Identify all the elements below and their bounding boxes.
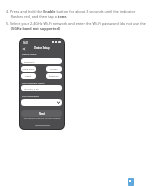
staticText: Bedroom — [24, 60, 35, 63]
staticText: Bedroom — [49, 75, 59, 78]
staticText: MYWIFI_2.4G — [24, 87, 39, 90]
staticText: 5. Select your 2.4GHz Wi-Fi network and … — [6, 21, 146, 31]
staticText: 4. Press and hold the Enable button for … — [6, 9, 136, 19]
other: Document — [128, 178, 134, 186]
staticText: Next — [39, 112, 45, 116]
button[interactable]: Living room — [21, 66, 36, 72]
button[interactable]: Kitchen — [46, 66, 62, 72]
button[interactable]: Office — [21, 73, 36, 79]
staticText: Device Setup — [34, 46, 50, 50]
button[interactable]: Next — [21, 110, 62, 117]
staticText: Kitchen — [50, 68, 58, 71]
button[interactable]: Bedroom — [46, 73, 62, 79]
staticText: Office — [25, 75, 32, 78]
staticText: Wi-Fi password — [22, 94, 39, 97]
staticText: Device name — [22, 52, 37, 55]
staticText: 9:41 — [23, 41, 29, 45]
button[interactable]: MYWIFI_2.4G — [21, 85, 62, 91]
staticText: Living room — [22, 68, 35, 71]
button[interactable]: Bedroom — [21, 58, 62, 64]
button[interactable]: Back — [21, 46, 26, 51]
staticText: Wi-Fi network name — [22, 81, 45, 84]
button[interactable]: Choose Wi-Fi password — [21, 99, 62, 106]
staticText: The device must be on and nearby — [20, 117, 64, 120]
